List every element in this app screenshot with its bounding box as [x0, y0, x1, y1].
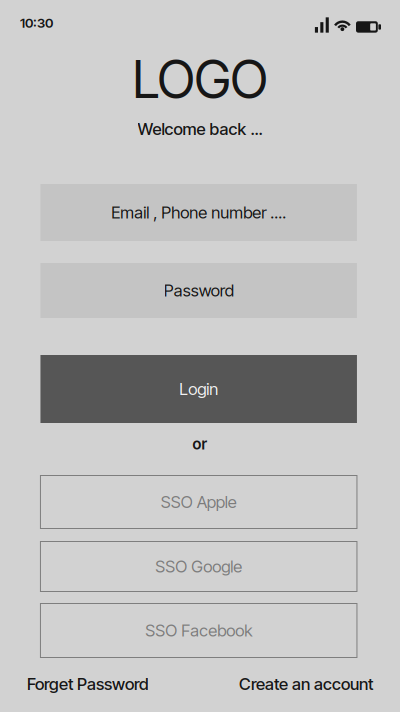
staticText: Forget Password	[27, 674, 149, 694]
staticText: Email , Phone number ....	[111, 202, 286, 223]
button[interactable]: Email , Phone number ....	[40, 184, 357, 241]
staticText: Create an account	[239, 674, 373, 694]
staticText: Password	[164, 280, 234, 301]
staticText: SSO Google	[155, 556, 242, 577]
button[interactable]: Login	[40, 355, 357, 423]
button[interactable]: SSO Google	[40, 541, 357, 591]
staticText: SSO Facebook	[145, 620, 252, 641]
staticText: LOGO	[132, 47, 267, 110]
staticText: Welcome back ...	[137, 119, 262, 139]
staticText: 10:30	[20, 15, 53, 31]
button[interactable]: Forget Password	[27, 674, 149, 694]
button[interactable]: Password	[40, 263, 357, 318]
staticText: Login	[179, 379, 218, 399]
staticText: or	[192, 435, 207, 453]
button[interactable]: SSO Facebook	[40, 603, 357, 657]
button[interactable]: SSO Apple	[40, 475, 357, 528]
staticText: SSO Apple	[161, 492, 237, 512]
button[interactable]: Create an account	[239, 674, 373, 694]
